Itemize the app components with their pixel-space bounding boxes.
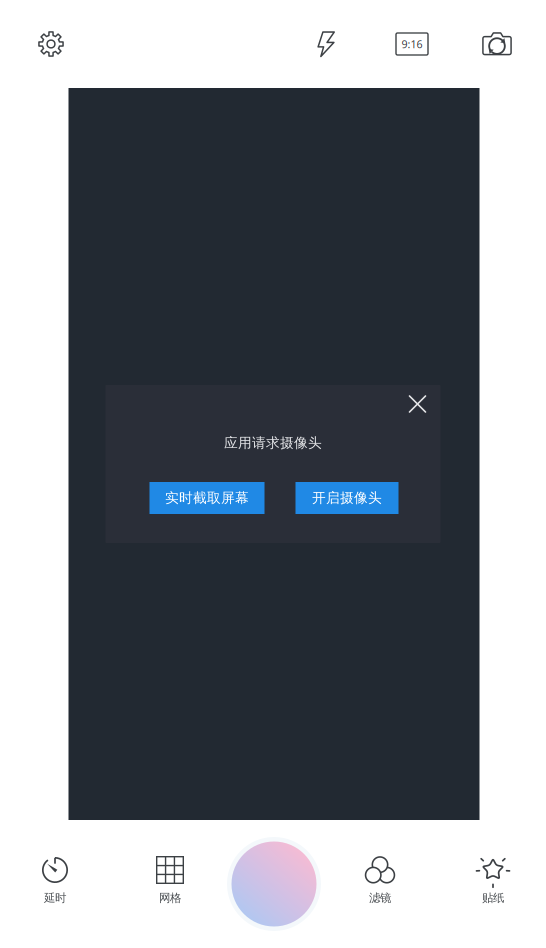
staticText: 实时截取屏幕 [165,489,249,507]
button[interactable]: 滤镜 [343,850,417,910]
button[interactable]: Flash [306,21,346,67]
button[interactable]: Settings [28,21,74,67]
staticText: 9:16 [401,37,422,51]
button[interactable]: 开启摄像头 [295,482,398,514]
staticText: 开启摄像头 [312,489,382,507]
staticText: 滤镜 [369,891,391,905]
button[interactable]: 网格 [133,850,207,910]
staticText: 延时 [44,891,66,905]
button[interactable]: Switch camera [474,21,520,67]
button[interactable]: 贴纸 [456,850,530,910]
staticText: 贴纸 [482,891,504,905]
button[interactable]: Shutter [224,834,324,934]
button[interactable]: 延时 [18,850,92,910]
button[interactable]: Aspect ratio 9 to 16 [390,21,434,67]
button[interactable]: Close [401,388,433,420]
button[interactable]: 实时截取屏幕 [149,482,264,514]
staticText: 应用请求摄像头 [224,434,322,452]
staticText: 网格 [159,891,181,905]
